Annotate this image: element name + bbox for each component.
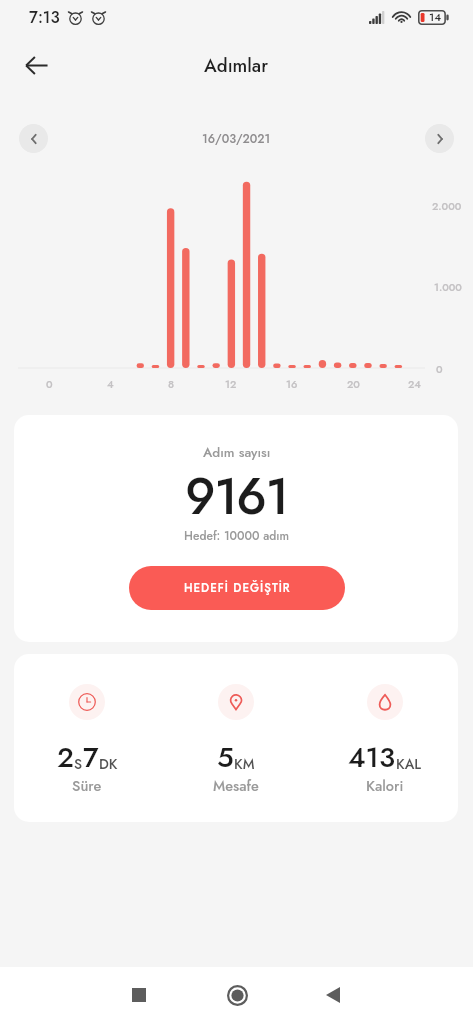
staticText: 9161: [185, 460, 288, 526]
button[interactable]: Home: [211, 969, 263, 1021]
staticText: 4: [107, 377, 114, 392]
staticText: 5: [217, 737, 234, 777]
button[interactable]: HEDEFİ DEĞİŞTİR: [129, 566, 345, 610]
staticText: 1.000: [434, 280, 462, 295]
staticText: 24: [408, 377, 421, 392]
staticText: 2: [57, 737, 74, 777]
staticText: DK: [99, 754, 118, 774]
staticText: Kalori: [366, 775, 404, 795]
staticText: 7: [83, 737, 99, 777]
button[interactable]: Next day: [425, 124, 454, 153]
staticText: HEDEFİ DEĞİŞTİR: [184, 580, 291, 597]
staticText: 0: [436, 362, 443, 377]
button[interactable]: Previous day: [19, 124, 48, 153]
button[interactable]: Recent apps: [113, 969, 165, 1021]
button[interactable]: Back: [12, 41, 60, 89]
staticText: KM: [234, 754, 255, 774]
staticText: 7:13: [29, 6, 60, 29]
staticText: 20: [347, 377, 360, 392]
staticText: Adım sayısı: [203, 443, 271, 463]
staticText: S: [74, 754, 83, 774]
staticText: 2.000: [432, 199, 462, 214]
button[interactable]: 2: [15, 672, 159, 806]
staticText: 16/03/2021: [202, 130, 271, 147]
button[interactable]: 413: [313, 672, 457, 806]
staticText: 12: [225, 377, 237, 392]
staticText: Adımlar: [204, 52, 269, 79]
staticText: 8: [168, 377, 175, 392]
staticText: Süre: [72, 775, 102, 795]
staticText: 0: [46, 377, 53, 392]
staticText: 16: [286, 377, 298, 392]
staticText: 413: [348, 737, 396, 777]
staticText: KAL: [396, 754, 422, 774]
staticText: Mesafe: [213, 775, 259, 795]
button[interactable]: 5: [164, 672, 308, 806]
staticText: 14: [429, 9, 442, 25]
staticText: Hedef: 10000 adım: [184, 527, 290, 544]
button[interactable]: Back: [307, 969, 359, 1021]
